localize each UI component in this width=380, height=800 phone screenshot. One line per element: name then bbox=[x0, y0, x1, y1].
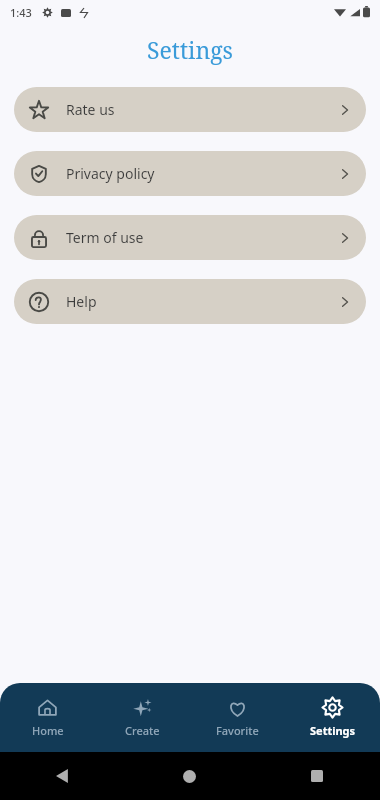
staticText: Favorite bbox=[216, 723, 259, 738]
staticText: Term of use bbox=[66, 228, 144, 247]
button[interactable]: Home bbox=[0, 683, 95, 752]
button[interactable]: Settings bbox=[285, 683, 380, 752]
button[interactable]: Help bbox=[14, 279, 366, 324]
button[interactable]: Term of use bbox=[14, 215, 366, 260]
staticText: Create bbox=[125, 723, 160, 738]
staticText: Rate us bbox=[66, 100, 115, 119]
staticText: Home bbox=[32, 723, 64, 738]
staticText: Help bbox=[66, 292, 97, 311]
button[interactable]: Favorite bbox=[190, 683, 285, 752]
staticText: Settings bbox=[147, 34, 233, 65]
button[interactable]: Rate us bbox=[14, 87, 366, 132]
button[interactable]: Create bbox=[95, 683, 190, 752]
button[interactable]: Privacy policy bbox=[14, 151, 366, 196]
staticText: 1:43 bbox=[10, 5, 32, 20]
staticText: Settings bbox=[310, 723, 356, 738]
staticText: Privacy policy bbox=[66, 164, 155, 183]
